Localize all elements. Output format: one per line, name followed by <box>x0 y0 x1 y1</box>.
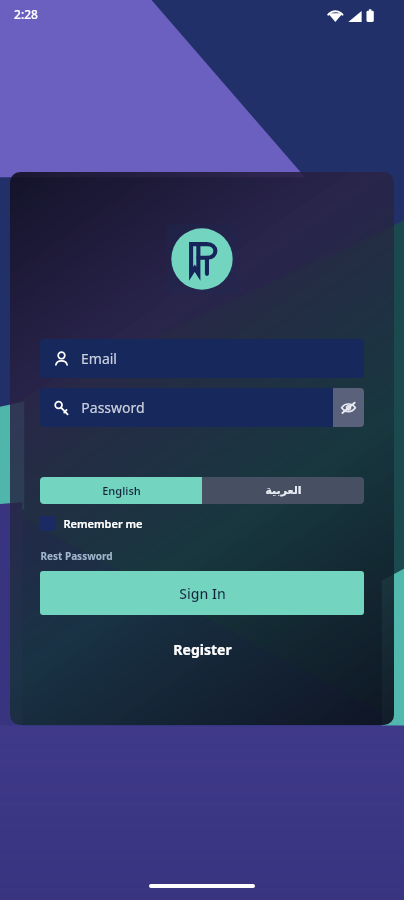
button[interactable]: Sign In <box>40 571 364 615</box>
button[interactable]: Password <box>40 388 333 427</box>
button[interactable]: العربية <box>202 477 364 504</box>
button[interactable]: Remember me <box>40 516 364 531</box>
staticText: Password <box>81 398 145 417</box>
button[interactable]: Show password <box>333 388 364 427</box>
button[interactable]: Register <box>163 637 242 662</box>
staticText: Remember me <box>63 516 143 531</box>
staticText: Sign In <box>179 584 226 603</box>
button[interactable]: Email <box>40 339 364 378</box>
staticText: العربية <box>265 484 302 497</box>
staticText: Email <box>81 349 117 368</box>
staticText: Register <box>173 640 232 659</box>
button[interactable]: English <box>40 477 202 504</box>
button[interactable]: Rest Password <box>40 549 113 563</box>
staticText: 2:28 <box>14 6 38 22</box>
staticText: English <box>102 483 141 498</box>
staticText: Rest Password <box>40 549 113 563</box>
